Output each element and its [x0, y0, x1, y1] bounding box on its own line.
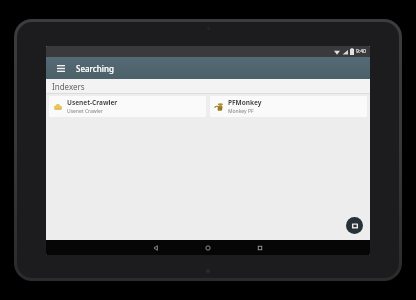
- staticText: Usenet Crawler: [67, 108, 103, 115]
- button[interactable]: Home: [193, 240, 223, 255]
- staticText: Indexers: [52, 81, 85, 92]
- staticText: PFMonkey: [228, 98, 262, 107]
- button[interactable]: Open navigation drawer: [53, 60, 69, 76]
- staticText: Searching: [76, 63, 114, 74]
- button[interactable]: Back: [141, 240, 171, 255]
- button[interactable]: PFMonkey: [210, 96, 367, 117]
- staticText: 9:40: [356, 48, 366, 55]
- staticText: Monkey PF: [228, 108, 254, 115]
- button[interactable]: Usenet-Crawler: [49, 96, 206, 117]
- staticText: Usenet-Crawler: [67, 98, 118, 107]
- button[interactable]: Recent apps: [245, 240, 275, 255]
- button[interactable]: Add indexer: [346, 217, 363, 234]
